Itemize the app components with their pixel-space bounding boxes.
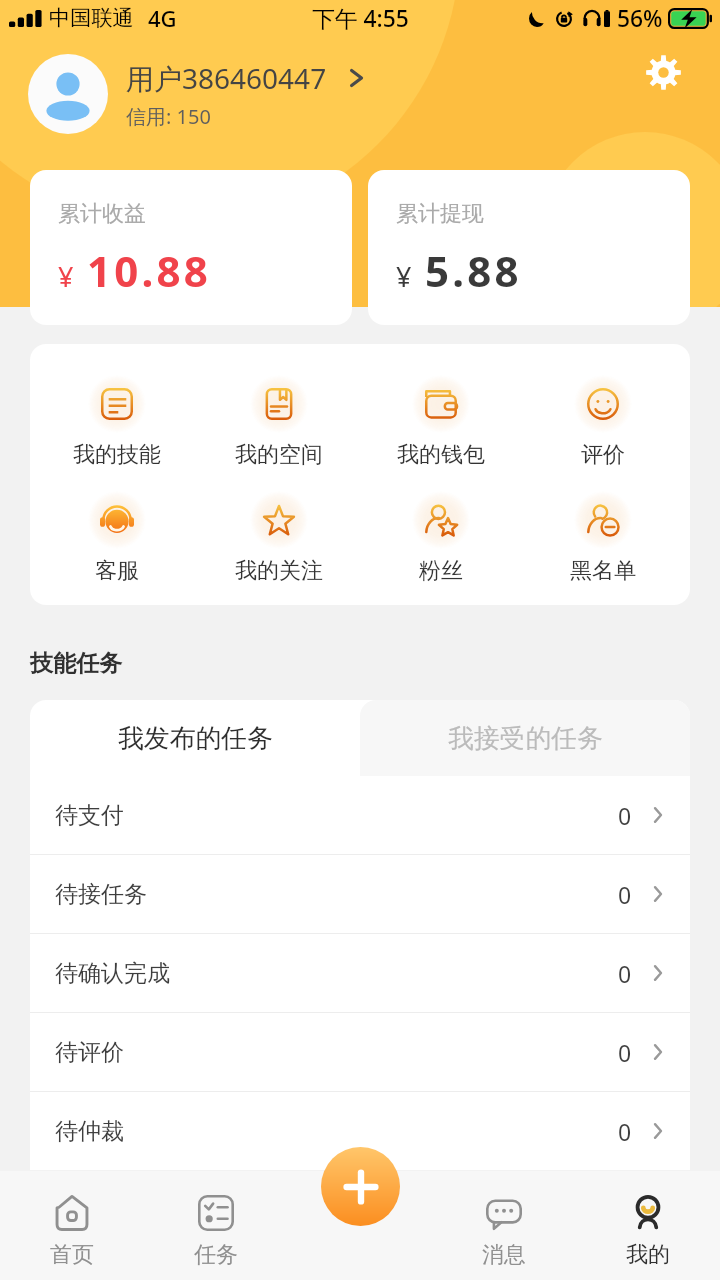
button[interactable]: Add (321, 1147, 400, 1226)
staticText: 我的关注 (235, 557, 323, 585)
staticText: 粉丝 (419, 557, 463, 585)
staticText: 10.88 (87, 242, 211, 299)
button[interactable]: 我发布的任务 (30, 700, 360, 776)
button[interactable]: 粉丝 (360, 491, 522, 585)
button[interactable]: 评价 (522, 375, 684, 469)
staticText: 0 (618, 800, 632, 831)
button[interactable]: 我接受的任务 (360, 700, 690, 776)
button[interactable]: 黑名单 (522, 491, 684, 585)
button[interactable]: 消息 (432, 1171, 576, 1280)
staticText: 中国联通 (49, 5, 134, 32)
button[interactable]: 我的关注 (198, 491, 360, 585)
staticText: 信用: 150 (126, 103, 211, 130)
button[interactable]: 待接任务 (30, 855, 690, 933)
button[interactable]: 我的空间 (198, 375, 360, 469)
staticText: 0 (618, 1116, 632, 1147)
staticText: ¥ (58, 258, 74, 295)
staticText: 4G (148, 3, 177, 33)
staticText: 我接受的任务 (448, 722, 603, 755)
staticText: 待支付 (55, 801, 124, 830)
button[interactable]: 我的 (576, 1171, 720, 1280)
staticText: 首页 (50, 1241, 94, 1269)
button[interactable]: 我的技能 (36, 375, 198, 469)
button[interactable]: 累计收益 (30, 170, 352, 325)
staticText: 56% (617, 3, 663, 34)
staticText: 我发布的任务 (118, 722, 273, 755)
staticText: 待评价 (55, 1038, 124, 1067)
staticText: ¥ (396, 258, 412, 295)
button[interactable]: 我的钱包 (360, 375, 522, 469)
staticText: 客服 (95, 557, 139, 585)
button[interactable]: 待支付 (30, 776, 690, 854)
button[interactable]: 任务 (144, 1171, 288, 1280)
staticText: 待仲裁 (55, 1117, 124, 1146)
staticText: 消息 (482, 1241, 526, 1269)
staticText: 技能任务 (30, 649, 122, 678)
staticText: 黑名单 (570, 557, 636, 585)
staticText: 我的空间 (235, 441, 323, 469)
staticText: 待接任务 (55, 880, 147, 909)
button[interactable]: 累计提现 (368, 170, 690, 325)
button[interactable]: 用户386460447 (28, 54, 367, 134)
button[interactable]: Settings (627, 36, 699, 108)
staticText: 累计收益 (58, 200, 146, 228)
staticText: 用户386460447 (126, 59, 327, 97)
button[interactable]: 客服 (36, 491, 198, 585)
staticText: 我的 (626, 1241, 670, 1269)
staticText: 下午 4:55 (312, 3, 409, 34)
button[interactable]: 首页 (0, 1171, 144, 1280)
staticText: 任务 (194, 1241, 238, 1269)
staticText: 评价 (581, 441, 625, 469)
staticText: 5.88 (425, 242, 522, 299)
staticText: 我的技能 (73, 441, 161, 469)
staticText: 待确认完成 (55, 959, 170, 988)
button[interactable]: 待评价 (30, 1013, 690, 1091)
staticText: 0 (618, 958, 632, 989)
staticText: 累计提现 (396, 200, 484, 228)
staticText: 0 (618, 879, 632, 910)
button[interactable]: 待确认完成 (30, 934, 690, 1012)
button[interactable]: 待仲裁 (30, 1092, 690, 1170)
staticText: 0 (618, 1037, 632, 1068)
staticText: 我的钱包 (397, 441, 485, 469)
